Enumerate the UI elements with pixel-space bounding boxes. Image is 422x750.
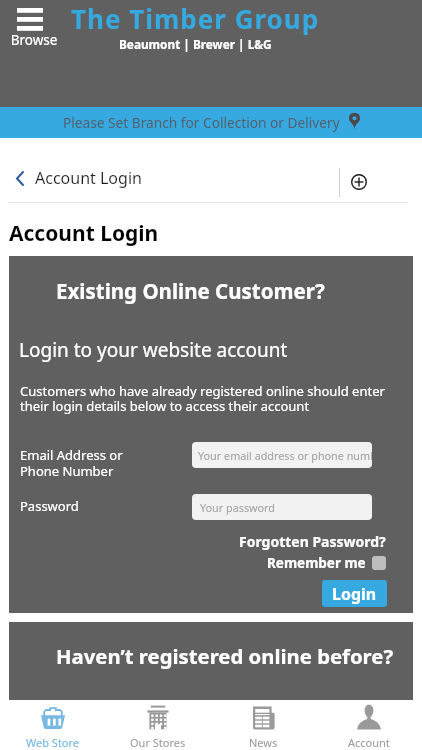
button[interactable]: News: [210, 700, 316, 750]
staticText: Existing Online Customer?: [56, 277, 325, 305]
button[interactable]: Haven’t registered online before?: [9, 622, 413, 700]
button[interactable]: Login: [322, 580, 387, 607]
button[interactable]: Add account: [341, 138, 422, 202]
staticText: Remember me: [267, 554, 366, 572]
button[interactable]: Browse: [8, 4, 62, 48]
staticText: Haven’t registered online before?: [56, 642, 394, 670]
button[interactable]: Our Stores: [105, 700, 210, 750]
staticText: The Timber Group: [71, 1, 320, 36]
staticText: Account Login: [9, 219, 159, 248]
staticText: Account Login: [35, 167, 142, 189]
button[interactable]: Account: [316, 700, 422, 750]
staticText: Forgotten Password?: [239, 532, 386, 551]
staticText: Our Stores: [130, 735, 186, 750]
button[interactable]: Your password: [192, 494, 372, 520]
staticText: Email Address or Phone Number: [20, 446, 123, 479]
staticText: Login to your website account: [19, 337, 288, 363]
button[interactable]: Forgotten Password?: [239, 532, 386, 551]
button[interactable]: Remember me: [267, 554, 386, 572]
staticText: News: [249, 735, 278, 750]
staticText: Please Set Branch for Collection or Deli…: [63, 113, 340, 132]
staticText: Web Store: [26, 735, 80, 750]
staticText: Your email address or phone number: [198, 448, 372, 463]
staticText: Customers who have already registered on…: [20, 382, 404, 415]
staticText: Login: [332, 583, 377, 605]
staticText: Browse: [7, 31, 61, 49]
staticText: Account: [348, 735, 390, 750]
button[interactable]: Account Login: [0, 157, 154, 199]
staticText: Beaumont | Brewer | L&G: [119, 36, 272, 52]
button[interactable]: Please Set Branch for Collection or Deli…: [0, 107, 422, 138]
button[interactable]: Web Store: [0, 700, 105, 750]
staticText: Your password: [200, 500, 275, 515]
button[interactable]: Your email address or phone number: [192, 442, 372, 468]
staticText: Password: [20, 497, 79, 515]
